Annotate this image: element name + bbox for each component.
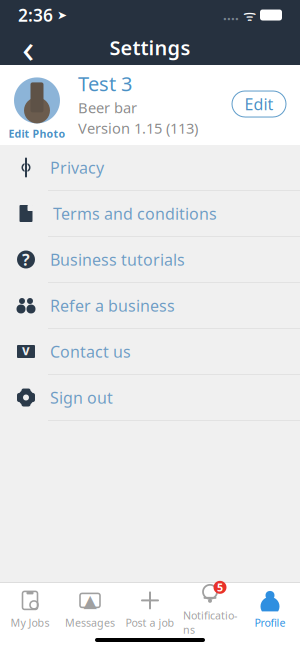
button[interactable]: v	[0, 329, 300, 374]
button[interactable]: My Jobs	[0, 588, 60, 630]
button[interactable]: Edit	[232, 91, 286, 117]
staticText: Notifications	[183, 608, 237, 637]
staticText: ?	[22, 249, 30, 270]
staticText: v	[22, 341, 30, 359]
staticText: Terms and conditions	[53, 203, 217, 224]
staticText: Sign out	[50, 387, 113, 408]
staticText: Post a job	[125, 615, 174, 630]
button[interactable]: Terms and conditions	[0, 191, 300, 236]
staticText: Test 3	[78, 70, 132, 97]
button[interactable]: ▲	[60, 588, 120, 630]
staticText: 2:36	[18, 3, 53, 26]
staticText: Settings	[109, 34, 190, 61]
staticText: ᯤ	[239, 5, 260, 25]
staticText: ➤	[53, 8, 67, 22]
staticText: Privacy	[50, 157, 104, 178]
staticText: Edit	[244, 93, 273, 115]
staticText: Edit Photo	[8, 126, 65, 141]
staticText: ....	[223, 6, 239, 24]
button[interactable]: Profile	[240, 588, 300, 630]
button[interactable]: Sign out	[0, 375, 300, 420]
button[interactable]: ?	[0, 237, 300, 282]
staticText: Business tutorials	[50, 249, 185, 270]
staticText: ‹	[22, 21, 34, 74]
staticText: 5	[217, 580, 223, 594]
staticText: Refer a business	[50, 295, 175, 316]
staticText: ▲	[83, 591, 96, 611]
staticText: My Jobs	[10, 615, 49, 630]
button[interactable]: Back	[6, 29, 50, 65]
button[interactable]: Refer a business	[0, 283, 300, 328]
staticText: Profile	[254, 615, 285, 630]
staticText: Version 1.15 (113)	[78, 118, 198, 138]
button[interactable]: 5	[180, 581, 240, 637]
button[interactable]: Privacy	[0, 145, 300, 190]
button[interactable]: Post a job	[120, 588, 180, 630]
staticText: Beer bar	[78, 98, 137, 117]
staticText: Messages	[65, 615, 115, 630]
staticText: Contact us	[50, 341, 131, 362]
button[interactable]: Edit Photo	[6, 77, 68, 141]
